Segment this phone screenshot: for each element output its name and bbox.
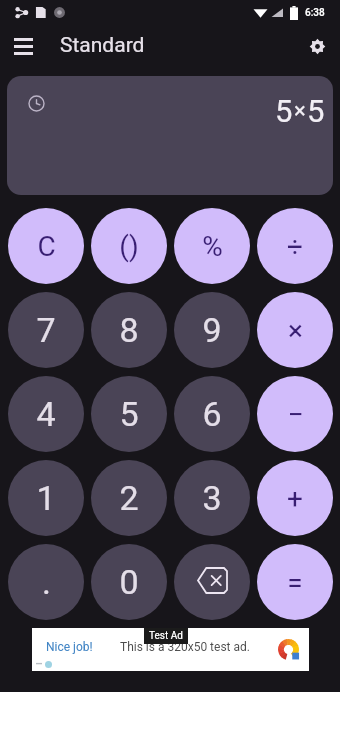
staticText: Nice job! (46, 640, 93, 654)
button[interactable]: Nice job! (32, 628, 309, 671)
other: Backspace (197, 567, 228, 594)
button[interactable]: 0 (91, 544, 167, 620)
staticText: 9 (202, 310, 222, 350)
button[interactable]: 8 (91, 292, 167, 368)
staticText: 5 (275, 93, 293, 129)
button[interactable]: 5 (91, 376, 167, 452)
staticText: . (42, 562, 51, 602)
staticText: + (287, 482, 303, 515)
staticText: × (288, 314, 303, 347)
staticText: % (202, 230, 223, 263)
button[interactable]: 1 (8, 460, 84, 536)
button[interactable]: Backspace (174, 544, 250, 620)
button[interactable]: × (257, 292, 333, 368)
button[interactable]: . (8, 544, 84, 620)
staticText: 5 (119, 394, 139, 434)
staticText: Standard (60, 33, 145, 58)
button[interactable]: ÷ (257, 208, 333, 284)
staticText: 1 (36, 478, 56, 518)
staticText: 5 (307, 93, 325, 129)
staticText: × (294, 98, 306, 124)
button[interactable]: + (257, 460, 333, 536)
button[interactable]: 9 (174, 292, 250, 368)
staticText: 2 (119, 478, 139, 518)
button[interactable]: () (91, 208, 167, 284)
button[interactable]: 4 (8, 376, 84, 452)
staticText: Test Ad (149, 630, 183, 642)
staticText: 6:38 (305, 7, 325, 19)
button[interactable]: 7 (8, 292, 84, 368)
staticText: 6 (202, 394, 222, 434)
button[interactable]: 6 (174, 376, 250, 452)
button[interactable]: − (257, 376, 333, 452)
button[interactable]: % (174, 208, 250, 284)
staticText: 8 (119, 310, 139, 350)
staticText: 7 (36, 310, 56, 350)
button[interactable]: Menu (5, 28, 41, 64)
staticText: 3 (202, 478, 222, 518)
staticText: C (37, 230, 56, 263)
button[interactable]: 3 (174, 460, 250, 536)
staticText: − (287, 398, 304, 431)
button[interactable]: 2 (91, 460, 167, 536)
staticText: = (287, 566, 303, 599)
staticText: () (119, 230, 139, 263)
button[interactable]: = (257, 544, 333, 620)
staticText: 0 (119, 562, 139, 602)
button[interactable]: C (8, 208, 84, 284)
staticText: 4 (36, 394, 56, 434)
button[interactable]: History (26, 93, 46, 113)
staticText: ÷ (287, 230, 303, 263)
button[interactable]: Settings (300, 29, 334, 63)
staticText: This is a 320x50 test ad. (120, 640, 250, 654)
